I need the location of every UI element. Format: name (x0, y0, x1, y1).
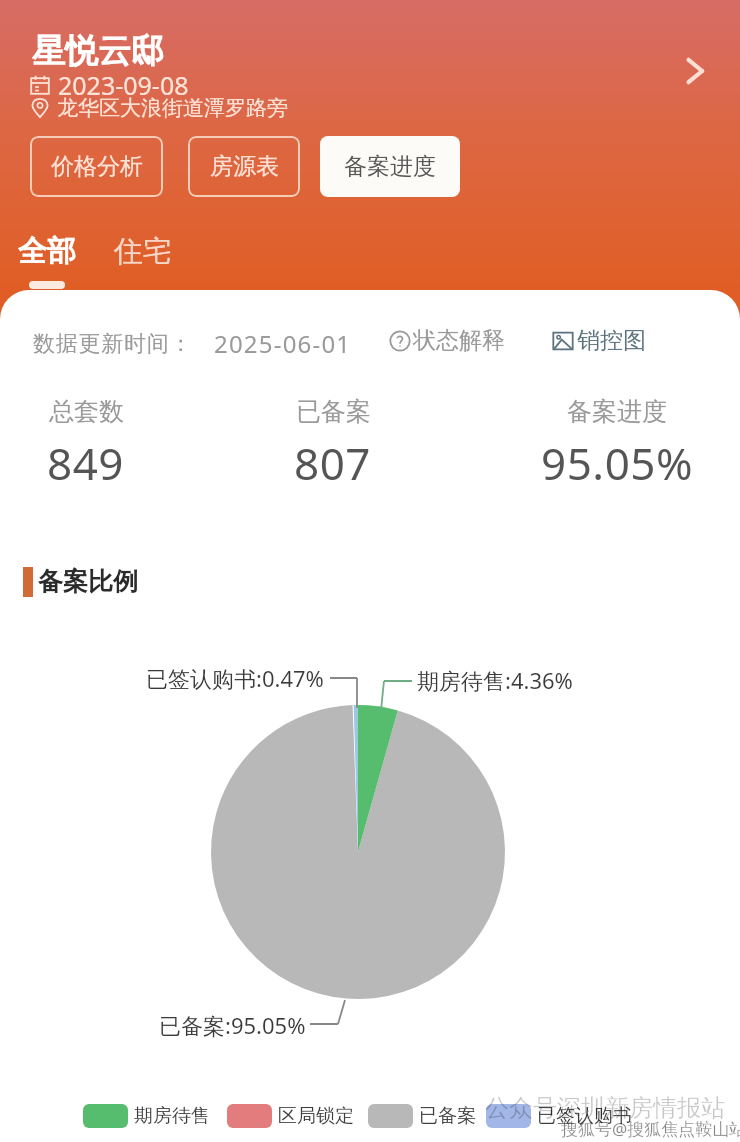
staticText: 备案进度 (344, 152, 436, 181)
staticText: 销控图 (577, 326, 646, 355)
staticText: 备案比例 (38, 566, 138, 597)
staticText: 住宅 (114, 233, 172, 270)
button[interactable]: 销控图 (552, 326, 646, 355)
staticText: 已备案 (419, 1104, 476, 1128)
staticText: 搜狐号@搜狐焦点鞍山站 (561, 1117, 740, 1140)
staticText: 已备案 (296, 396, 371, 427)
staticText: 星悦云邸 (32, 30, 164, 72)
staticText: 状态解释 (413, 326, 505, 355)
staticText: 公众号深圳新房情报站 (485, 1093, 725, 1123)
staticText: 全部 (18, 233, 76, 270)
staticText: 期房待售 (134, 1104, 210, 1128)
button[interactable]: 备案进度 (320, 136, 460, 197)
staticText: 数据更新时间： (33, 330, 193, 358)
staticText: 已签认购书:0.47% (146, 663, 324, 693)
staticText: 价格分析 (51, 152, 143, 181)
staticText: 95.05% (541, 433, 694, 493)
button[interactable]: 状态解释 (389, 326, 505, 355)
staticText: 已签认购书 (537, 1104, 632, 1128)
staticText: 807 (294, 433, 372, 493)
button[interactable]: 全部 (18, 233, 76, 289)
staticText: 总套数 (49, 396, 124, 427)
staticText: 849 (47, 433, 125, 493)
staticText: 区局锁定 (278, 1104, 354, 1128)
staticText: 期房待售:4.36% (417, 665, 573, 695)
button[interactable]: 房源表 (188, 136, 300, 197)
staticText: 备案进度 (567, 396, 667, 427)
button[interactable]: Open project detail (673, 50, 715, 92)
button[interactable]: 价格分析 (30, 136, 163, 197)
staticText: 已备案:95.05% (159, 1010, 306, 1040)
staticText: 龙华区大浪街道潭罗路旁 (57, 95, 288, 121)
staticText: 2025-06-01 (214, 327, 352, 360)
button[interactable]: 住宅 (114, 233, 172, 270)
staticText: 房源表 (210, 152, 279, 181)
staticText: 2023-09-08 (58, 68, 189, 102)
